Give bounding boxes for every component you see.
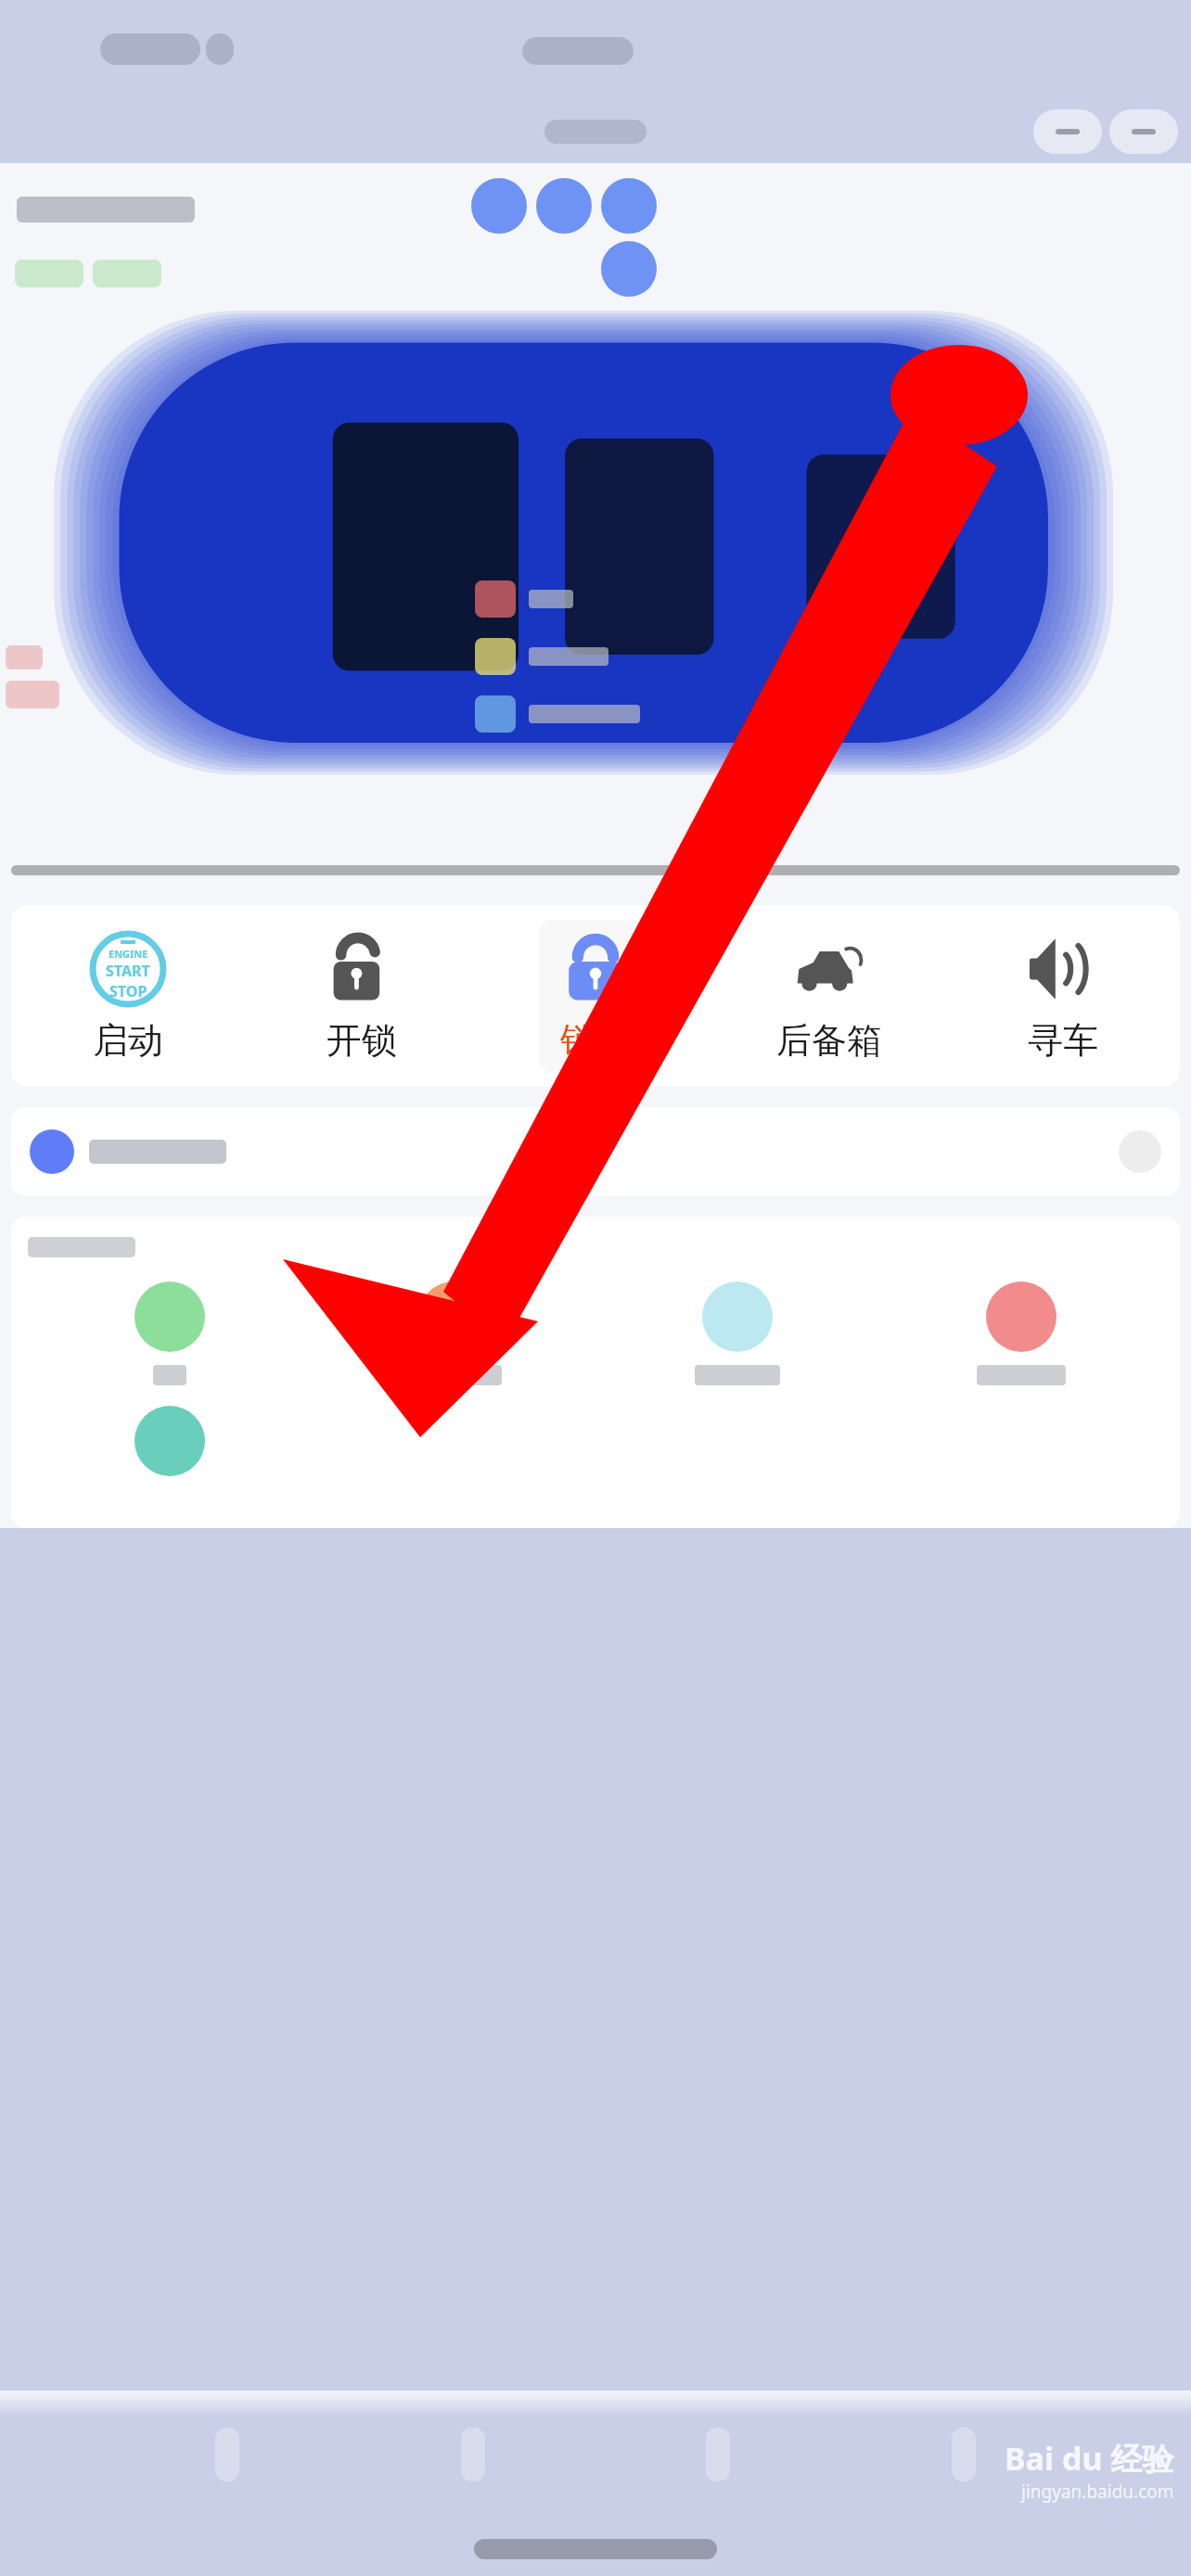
button[interactable] [11, 1107, 1180, 1196]
staticText: 寻车 [1028, 1018, 1098, 1063]
button[interactable]: Tab 3 [699, 2422, 736, 2487]
button[interactable]: Action 4 [601, 241, 657, 297]
button[interactable]: Service [28, 1282, 312, 1385]
staticText: 锁车 [560, 1018, 631, 1063]
staticText: STOP [109, 981, 147, 1001]
button[interactable]: Action 3 [601, 178, 657, 234]
staticText: ENGINE [109, 947, 148, 961]
button[interactable]: 开锁 [305, 920, 418, 1072]
button[interactable]: ENGINE [71, 920, 185, 1072]
button[interactable]: 锁车 [539, 920, 652, 1072]
staticText: START [106, 961, 150, 981]
button[interactable]: Tab 4 [945, 2422, 982, 2487]
button[interactable]: Tab 1 [209, 2422, 246, 2487]
button[interactable]: Service [595, 1282, 879, 1385]
button[interactable]: Service [312, 1282, 595, 1385]
button[interactable]: Action 2 [536, 178, 592, 234]
button[interactable]: 寻车 [1006, 920, 1120, 1072]
staticText: 启动 [93, 1018, 163, 1063]
staticText: 后备箱 [776, 1018, 882, 1063]
button[interactable]: Service [28, 1406, 312, 1510]
button[interactable]: 后备箱 [760, 920, 899, 1072]
staticText: 开锁 [327, 1018, 397, 1063]
button[interactable]: Service [879, 1282, 1163, 1385]
staticText: Bai du 经验 [1005, 2437, 1174, 2480]
staticText: jingyan.baidu.com [1021, 2480, 1174, 2504]
button[interactable]: Share [1033, 109, 1102, 154]
button[interactable]: Action 1 [471, 178, 527, 234]
button[interactable]: Menu [1109, 109, 1178, 154]
button[interactable]: Tab 2 [455, 2422, 492, 2487]
